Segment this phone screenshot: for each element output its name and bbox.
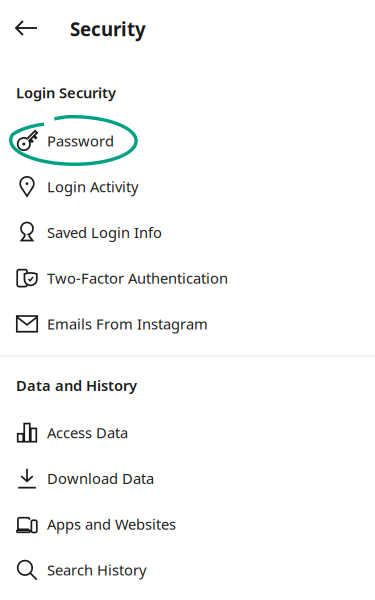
button[interactable]: Login Activity: [0, 164, 375, 210]
staticText: Password: [47, 131, 114, 151]
staticText: Search History: [47, 560, 146, 580]
button[interactable]: Download Data: [0, 455, 375, 501]
staticText: Data and History: [16, 375, 137, 395]
button[interactable]: Search History: [0, 547, 375, 593]
button[interactable]: Two-Factor Authentication: [0, 255, 375, 301]
button[interactable]: Apps and Websites: [0, 501, 375, 547]
staticText: Login Security: [16, 83, 116, 102]
staticText: Security: [70, 17, 146, 41]
staticText: Emails From Instagram: [47, 314, 208, 334]
staticText: Access Data: [47, 423, 128, 442]
button[interactable]: Emails From Instagram: [0, 301, 375, 347]
staticText: Saved Login Info: [47, 223, 162, 242]
button[interactable]: Access Data: [0, 410, 375, 456]
button[interactable]: Back: [0, 6, 53, 50]
button[interactable]: Password: [0, 118, 375, 164]
staticText: Login Activity: [47, 177, 138, 196]
staticText: Apps and Websites: [47, 514, 176, 534]
button[interactable]: Saved Login Info: [0, 209, 375, 255]
staticText: Download Data: [47, 469, 154, 488]
staticText: Two-Factor Authentication: [47, 268, 228, 288]
